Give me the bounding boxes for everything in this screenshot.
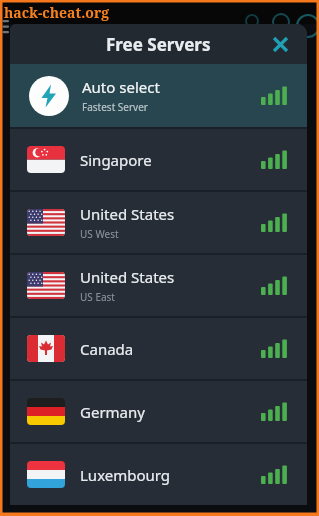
staticText: Auto select <box>82 77 160 97</box>
button[interactable]: Luxembourg <box>10 444 307 505</box>
staticText: hack-cheat.org <box>4 3 110 22</box>
button[interactable]: Germany <box>10 381 307 442</box>
button[interactable]: Auto select <box>10 64 307 127</box>
button[interactable]: United States <box>10 255 307 316</box>
staticText: US West <box>80 227 119 241</box>
staticText: United States <box>80 267 175 287</box>
button[interactable]: Singapore <box>10 129 307 190</box>
staticText: US East <box>80 290 115 304</box>
button[interactable]: United States <box>10 192 307 253</box>
staticText: Free Servers <box>106 33 211 56</box>
staticText: Singapore <box>80 150 152 170</box>
staticText: Canada <box>80 339 134 359</box>
staticText: Luxembourg <box>80 465 171 485</box>
staticText: United States <box>80 204 175 224</box>
button[interactable]: Canada <box>10 318 307 379</box>
staticText: Fastest Server <box>82 100 148 114</box>
staticText: Germany <box>80 402 145 422</box>
button[interactable] <box>270 34 290 54</box>
